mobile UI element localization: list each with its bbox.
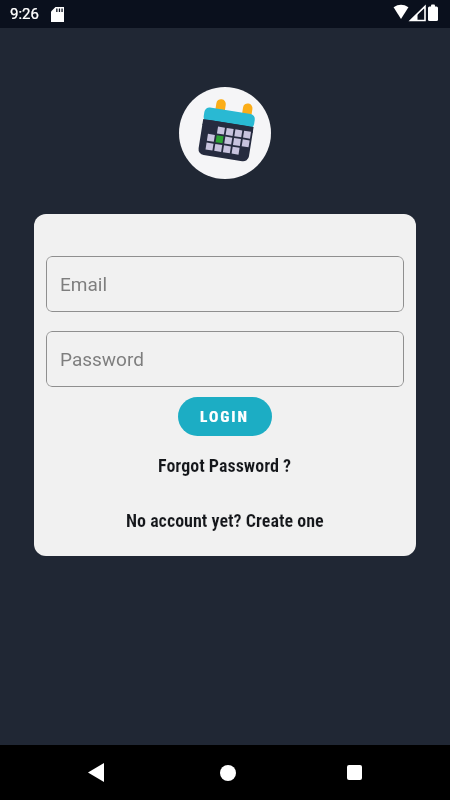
button[interactable] [68,745,124,800]
staticText: Email [60,273,108,295]
button[interactable]: No account yet? Create one [126,510,324,531]
button[interactable]: Forgot Password ? [158,455,292,476]
staticText: LOGIN [200,408,250,426]
button[interactable] [326,745,382,800]
staticText: Password [60,348,144,370]
button[interactable]: Password [46,331,404,387]
staticText: 9:26 [10,5,39,23]
button[interactable]: Email [46,256,404,312]
button[interactable]: LOGIN [178,397,272,436]
button[interactable] [200,745,256,800]
